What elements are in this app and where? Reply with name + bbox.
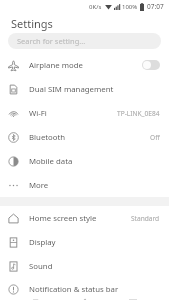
staticText: Off xyxy=(150,133,160,142)
staticText: 100% xyxy=(122,3,138,11)
button[interactable]: Home screen style xyxy=(0,206,169,230)
staticText: Mobile data xyxy=(29,156,73,167)
staticText: Sound xyxy=(29,261,53,272)
button[interactable]: Notification & status bar xyxy=(0,278,169,300)
button[interactable]: Dual SIM management xyxy=(0,77,169,101)
staticText: Search for setting... xyxy=(17,36,86,46)
staticText: Standard xyxy=(131,214,160,223)
staticText: 0K/s xyxy=(89,3,102,11)
button[interactable]: Wi-Fi xyxy=(0,101,169,125)
staticText: More xyxy=(29,180,49,191)
button[interactable]: More xyxy=(0,173,169,197)
staticText: TP-LINK_0E84 xyxy=(117,109,160,118)
staticText: Notification & status bar xyxy=(29,284,119,295)
staticText: 07:07 xyxy=(147,2,164,11)
button[interactable]: Bluetooth xyxy=(0,125,169,149)
button[interactable]: Display xyxy=(0,230,169,254)
button[interactable]: Airplane mode xyxy=(0,53,169,77)
button[interactable]: Mobile data xyxy=(0,149,169,173)
button[interactable]: Sound xyxy=(0,254,169,278)
button[interactable]: Search for setting... xyxy=(8,33,161,49)
staticText: Wi-Fi xyxy=(29,108,47,119)
staticText: Airplane mode xyxy=(29,60,83,71)
staticText: Display xyxy=(29,237,56,248)
staticText: Home screen style xyxy=(29,213,97,224)
button[interactable]: Airplane mode toggle xyxy=(142,60,160,70)
staticText: Bluetooth xyxy=(29,132,66,143)
staticText: Settings xyxy=(11,16,53,31)
staticText: Dual SIM management xyxy=(29,84,114,95)
